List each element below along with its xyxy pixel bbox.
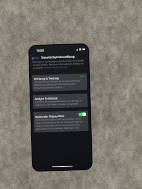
staticText: AUS (80, 75, 85, 78)
staticText: Apps (33, 56, 40, 60)
staticText: Anonyme Nutzungsdaten helfen uns die App… (35, 99, 86, 107)
staticText: Wenn du diese Option aktivierst werden d… (35, 117, 87, 131)
button[interactable]: Back (31, 56, 40, 60)
staticText: Werbung & Tracking (34, 76, 59, 80)
staticText: Hier kannst du festlegen ob dir personal… (34, 79, 85, 90)
staticText: Hier kannst du festlegen welche Daten ve… (32, 59, 86, 70)
button[interactable]: Werbung & Tracking (32, 73, 87, 92)
button[interactable]: Analyse & Statistik (33, 93, 88, 109)
button[interactable]: Toggle optional privacy (78, 112, 86, 116)
staticText: 10:58 (36, 48, 44, 53)
staticText: Analyse & Statistik (35, 96, 58, 100)
button[interactable]: Optionaler Datenschutz (33, 110, 89, 133)
staticText: Datenschutzeinstellung (41, 54, 75, 60)
staticText: Optionaler Datenschutz (35, 114, 65, 118)
